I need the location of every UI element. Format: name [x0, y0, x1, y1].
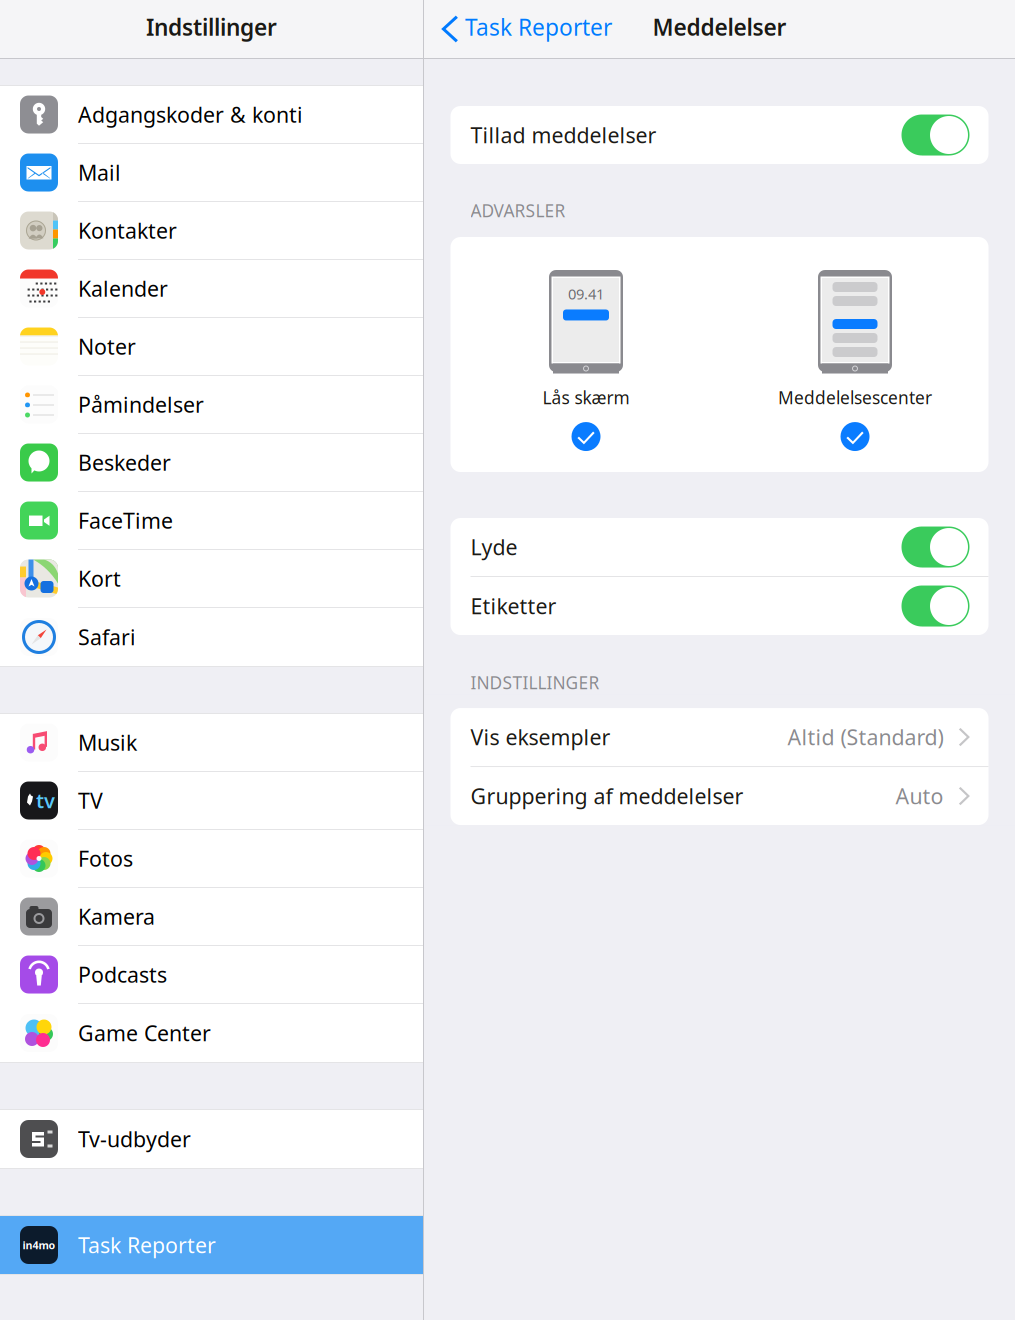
staticText: Etiketter: [470, 592, 556, 620]
staticText: Game Center: [78, 1019, 211, 1047]
button[interactable]: Noter: [0, 318, 423, 376]
staticText: TV: [78, 786, 103, 815]
staticText: FaceTime: [78, 506, 173, 535]
button[interactable]: Fotos: [0, 830, 423, 888]
button[interactable]: Kamera: [0, 888, 423, 946]
staticText: Meddelelsescenter: [778, 386, 932, 409]
staticText: Podcasts: [78, 960, 167, 989]
staticText: Tv-udbyder: [78, 1125, 191, 1153]
button[interactable]: FaceTime: [0, 492, 423, 550]
button[interactable]: Mail: [0, 144, 423, 202]
staticText: Beskeder: [78, 448, 171, 477]
staticText: Adgangskoder & konti: [78, 100, 303, 129]
button[interactable]: Game Center: [0, 1004, 423, 1062]
staticText: Påmindelser: [78, 390, 204, 419]
staticText: Task Reporter: [78, 1231, 216, 1259]
staticText: Kalender: [78, 274, 168, 303]
staticText: INDSTILLINGER: [470, 671, 599, 694]
button[interactable]: tv: [0, 772, 423, 830]
staticText: Kamera: [78, 902, 155, 931]
staticText: ADVARSLER: [470, 199, 565, 222]
staticText: Indstillinger: [146, 12, 277, 42]
button[interactable]: Tv-udbyder: [0, 1110, 423, 1168]
button[interactable]: Kort: [0, 550, 423, 608]
button[interactable]: Podcasts: [0, 946, 423, 1004]
button[interactable]: 09.41: [542, 237, 629, 472]
staticText: Mail: [78, 158, 121, 187]
staticText: 09.41: [568, 284, 604, 303]
staticText: Kontakter: [78, 216, 177, 245]
staticText: Noter: [78, 332, 136, 361]
button[interactable]: Slå til eller fra: [901, 585, 969, 626]
button[interactable]: Safari: [0, 608, 423, 666]
button[interactable]: Meddelelsescenter: [778, 237, 932, 472]
button[interactable]: Task Reporter: [424, 0, 612, 58]
staticText: Task Reporter: [465, 12, 612, 42]
button[interactable]: Slå til eller fra: [901, 526, 969, 567]
button[interactable]: Gruppering af meddelelser: [450, 767, 988, 825]
staticText: Fotos: [78, 844, 133, 873]
staticText: Lås skærm: [542, 386, 629, 409]
staticText: Musik: [78, 728, 137, 757]
staticText: Meddelelser: [652, 12, 786, 42]
staticText: Gruppering af meddelelser: [470, 782, 743, 810]
staticText: tv: [36, 787, 55, 814]
button[interactable]: Kontakter: [0, 202, 423, 260]
staticText: Safari: [78, 623, 136, 651]
staticText: Auto: [895, 782, 943, 810]
staticText: Lyde: [470, 533, 517, 561]
button[interactable]: Lyde: [450, 518, 988, 576]
staticText: Altid (Standard): [787, 723, 943, 751]
button[interactable]: Adgangskoder & konti: [0, 86, 423, 144]
button[interactable]: Slå til eller fra: [901, 114, 969, 155]
staticText: in4mo: [22, 1238, 55, 1252]
button[interactable]: Beskeder: [0, 434, 423, 492]
button[interactable]: Påmindelser: [0, 376, 423, 434]
staticText: Tillad meddelelser: [470, 121, 656, 149]
button[interactable]: Vis eksempler: [450, 708, 988, 766]
button[interactable]: Kalender: [0, 260, 423, 318]
button[interactable]: Etiketter: [450, 577, 988, 635]
button[interactable]: in4mo: [0, 1216, 423, 1274]
staticText: Vis eksempler: [470, 723, 610, 751]
button[interactable]: Musik: [0, 714, 423, 772]
staticText: Kort: [78, 564, 121, 593]
